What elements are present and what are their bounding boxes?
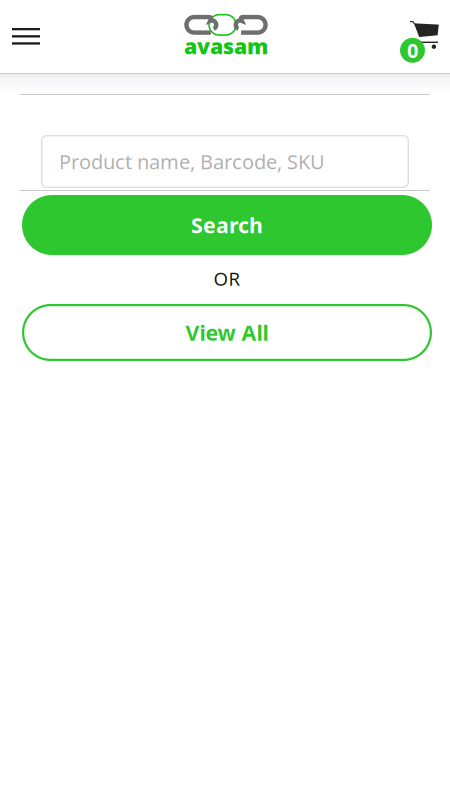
button[interactable]: View All [22,304,432,361]
button[interactable]: Search [22,195,432,255]
button[interactable]: Menu [0,0,450,73]
staticText: 0 [407,37,418,64]
button[interactable]: Avasam home [0,0,450,73]
staticText: View All [185,318,268,347]
button[interactable]: Cart [0,0,450,73]
staticText: Search [191,211,263,239]
staticText: Product name, Barcode, SKU [59,148,325,175]
staticText: avasam [184,32,268,60]
staticText: OR [213,266,240,291]
